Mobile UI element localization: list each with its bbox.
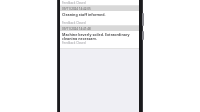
- button[interactable]: Feedback Closed: [60, 20, 139, 25]
- other: Volume: [142, 13, 144, 26]
- button[interactable]: Cleaning staff informed.: [60, 11, 139, 20]
- staticText: Feedback Closed: [62, 1, 86, 5]
- staticText: 09/11/2024 14:42:05: [62, 7, 91, 11]
- button[interactable]: 09/11/2024 14:41:48: [60, 26, 139, 31]
- button[interactable]: 09/11/2024 14:42:05: [60, 6, 139, 11]
- other: Power: [142, 31, 144, 40]
- staticText: 09/11/2024 14:41:48: [62, 27, 91, 31]
- button[interactable]: Machine beverly soiled. Extraordinary cl…: [60, 31, 139, 40]
- staticText: Cleaning staff informed.: [62, 12, 106, 17]
- staticText: Feedback Closed: [62, 41, 86, 45]
- button[interactable]: Feedback Closed: [60, 0, 139, 5]
- button[interactable]: Feedback Closed: [60, 40, 139, 45]
- staticText: Machine beverly soiled. Extraordinary cl…: [62, 32, 137, 40]
- staticText: Feedback Closed: [62, 21, 86, 25]
